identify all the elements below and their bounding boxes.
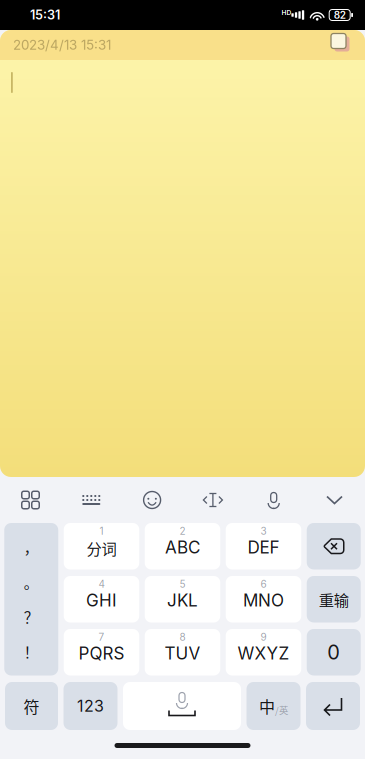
staticText: WXYZ — [237, 643, 289, 664]
button[interactable] — [123, 682, 241, 730]
button[interactable]: 7 — [64, 629, 139, 675]
staticText: 2 — [179, 525, 185, 537]
staticText: 重输 — [319, 588, 349, 610]
button[interactable]: Panels — [0, 477, 61, 523]
staticText: JKL — [167, 590, 198, 611]
staticText: 9 — [260, 631, 266, 643]
staticText: 7 — [98, 631, 104, 643]
staticText: ？ — [24, 606, 39, 627]
staticText: DEF — [247, 537, 279, 558]
staticText: 5 — [179, 578, 185, 590]
staticText: ！ — [24, 641, 39, 662]
button[interactable]: Duplicate note — [331, 34, 365, 56]
staticText: 分词 — [86, 537, 116, 559]
staticText: 1 — [99, 525, 103, 537]
staticText: 0 — [327, 640, 340, 664]
button[interactable]: 3 — [226, 523, 301, 569]
button[interactable]: 6 — [226, 576, 301, 622]
staticText: GHI — [86, 590, 117, 611]
button[interactable]: 123 — [63, 682, 117, 730]
staticText: HD — [281, 8, 291, 17]
button[interactable]: Emoji — [122, 477, 182, 523]
staticText: 4 — [98, 578, 104, 590]
button[interactable]: Keyboard layout — [61, 477, 122, 523]
button[interactable]: 5 — [145, 576, 220, 622]
button[interactable]: Move cursor — [182, 477, 243, 523]
button[interactable]: 8 — [145, 629, 220, 675]
staticText: 3 — [260, 525, 266, 537]
staticText: ABC — [165, 537, 200, 558]
staticText: 符 — [23, 694, 39, 718]
button[interactable]: 中 — [246, 682, 300, 730]
button[interactable]: 1 — [64, 523, 139, 569]
button[interactable] — [306, 682, 360, 730]
button[interactable]: ， — [4, 523, 58, 675]
staticText: 123 — [77, 696, 104, 716]
button[interactable]: 9 — [226, 629, 301, 675]
staticText: 。 — [24, 571, 39, 592]
staticText: MNO — [243, 590, 284, 611]
staticText: TUV — [164, 643, 200, 664]
button[interactable] — [307, 523, 361, 569]
staticText: 2023/4/13 15:31 — [13, 37, 111, 53]
staticText: 中 — [259, 694, 275, 718]
staticText: 8 — [179, 631, 185, 643]
button[interactable]: 2 — [145, 523, 220, 569]
staticText: PQRS — [78, 643, 124, 664]
staticText: ， — [24, 536, 39, 558]
button[interactable]: 重输 — [307, 576, 361, 622]
staticText: 6 — [260, 578, 266, 590]
button[interactable]: 符 — [5, 682, 58, 730]
button[interactable]: Voice input — [243, 477, 304, 523]
button[interactable]: Hide keyboard — [304, 477, 365, 523]
staticText: /英 — [275, 703, 288, 717]
staticText: 82 — [334, 9, 346, 21]
button[interactable]: 0 — [307, 629, 361, 675]
staticText: 15:31 — [30, 7, 60, 23]
button[interactable]: 4 — [64, 576, 139, 622]
